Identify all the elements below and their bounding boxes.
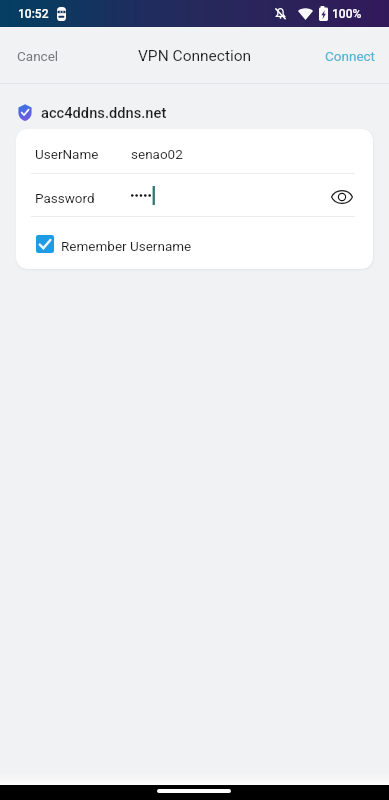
staticText: Password — [35, 190, 131, 206]
staticText: senao02 — [131, 146, 183, 162]
staticText: UserName — [35, 146, 131, 162]
button[interactable]: Connect — [313, 39, 388, 73]
staticText: 10:52 — [18, 7, 49, 21]
button[interactable]: Show password — [327, 184, 357, 206]
staticText: Cancel — [17, 48, 59, 64]
button[interactable]: Password — [16, 174, 373, 216]
staticText: acc4ddns.ddns.net — [41, 104, 167, 121]
staticText: Remember Username — [61, 238, 192, 254]
staticText: VPN Connection — [138, 47, 252, 65]
staticText: 100% — [332, 7, 362, 21]
button[interactable]: UserName — [16, 129, 373, 173]
button[interactable]: Cancel — [5, 39, 71, 73]
staticText: Connect — [325, 48, 376, 64]
button[interactable]: Remember Username — [16, 217, 373, 269]
